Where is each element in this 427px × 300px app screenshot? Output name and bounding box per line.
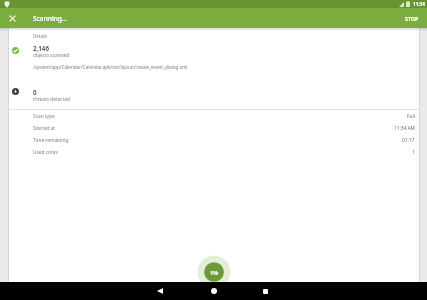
- button[interactable]: [205, 282, 223, 300]
- staticText: objects scanned: [33, 52, 70, 59]
- staticText: Time remaining: [33, 137, 69, 144]
- button[interactable]: [256, 282, 274, 300]
- staticText: 0: [33, 88, 37, 96]
- button[interactable]: STOP: [389, 8, 419, 28]
- staticText: 2,146: [33, 44, 49, 52]
- staticText: Used cores: [33, 149, 58, 156]
- button[interactable]: [151, 282, 169, 300]
- staticText: 1%: [210, 269, 219, 276]
- staticText: 01:17: [402, 137, 415, 144]
- staticText: Scan type: [33, 113, 55, 120]
- staticText: Full: [407, 113, 415, 120]
- staticText: 1: [412, 149, 415, 156]
- staticText: STOP: [405, 15, 419, 22]
- staticText: 11:34 AM: [394, 125, 415, 132]
- staticText: 11:34: [413, 1, 425, 7]
- staticText: threats detected: [33, 96, 71, 103]
- staticText: Scanning...: [33, 14, 68, 23]
- staticText: Details: [33, 33, 48, 39]
- button[interactable]: [5, 11, 20, 26]
- staticText: /system/app/Calendar/Calendar.apk/res/la…: [33, 64, 188, 70]
- staticText: Started at: [33, 125, 56, 132]
